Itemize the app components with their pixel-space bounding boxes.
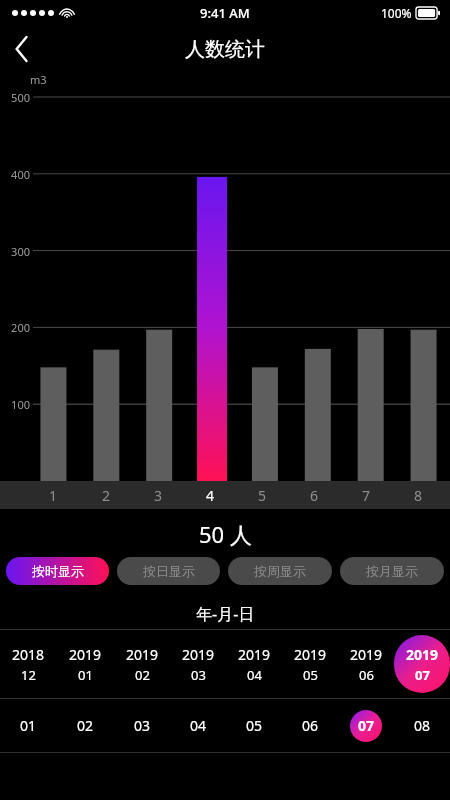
staticText: 2019 — [294, 645, 327, 664]
button[interactable]: 按周显示 — [228, 557, 332, 585]
staticText: 2019 — [182, 645, 215, 664]
staticText: 04 — [190, 716, 207, 735]
staticText: 按周显示 — [254, 563, 306, 579]
button[interactable]: 2019 — [170, 630, 226, 698]
staticText: 03 — [134, 716, 151, 735]
button[interactable]: 2019 — [282, 630, 338, 698]
staticText: 7 — [362, 486, 371, 505]
staticText: 05 — [246, 716, 263, 735]
button[interactable]: 8 — [392, 481, 444, 509]
button[interactable]: 08 — [394, 699, 450, 752]
staticText: 400 — [0, 167, 30, 182]
staticText: 300 — [0, 244, 30, 259]
button[interactable]: 2 — [80, 481, 132, 509]
button[interactable]: Back — [0, 27, 44, 71]
button[interactable]: 06 — [282, 699, 338, 752]
button[interactable]: 03 — [114, 699, 170, 752]
staticText: 07 — [358, 716, 375, 735]
staticText: 06 — [302, 716, 319, 735]
button[interactable]: 2019 — [57, 630, 114, 698]
staticText: 01 — [20, 716, 37, 735]
staticText: 人数统计 — [185, 37, 265, 62]
staticText: 年-月-日 — [196, 603, 255, 625]
button[interactable]: 1 — [27, 481, 80, 509]
staticText: 04 — [247, 666, 262, 684]
staticText: 12 — [21, 666, 36, 684]
button[interactable]: 05 — [226, 699, 282, 752]
button[interactable]: 4 — [184, 481, 236, 509]
staticText: 07 — [415, 666, 430, 684]
button[interactable]: 6 — [288, 481, 340, 509]
staticText: 08 — [414, 716, 431, 735]
staticText: 2019 — [126, 645, 159, 664]
staticText: 4 — [206, 486, 215, 505]
staticText: 2 — [102, 486, 111, 505]
staticText: 2019 — [238, 645, 271, 664]
staticText: 2019 — [406, 645, 439, 664]
button[interactable]: 2019 — [394, 630, 450, 698]
button[interactable]: 3 — [132, 481, 184, 509]
button[interactable]: 04 — [170, 699, 226, 752]
staticText: 2018 — [12, 645, 45, 664]
staticText: 200 — [0, 320, 30, 335]
button[interactable]: 按日显示 — [117, 557, 220, 585]
button[interactable]: 02 — [57, 699, 114, 752]
staticText: 2019 — [350, 645, 383, 664]
button[interactable]: 按月显示 — [340, 557, 444, 585]
button[interactable]: 按时显示 — [6, 557, 109, 585]
staticText: 3 — [154, 486, 163, 505]
staticText: 02 — [135, 666, 150, 684]
button[interactable]: 7 — [340, 481, 392, 509]
button[interactable]: 2018 — [0, 630, 57, 698]
staticText: 01 — [78, 666, 93, 684]
button[interactable]: 01 — [0, 699, 57, 752]
staticText: 02 — [77, 716, 94, 735]
staticText: 1 — [49, 486, 58, 505]
staticText: 8 — [414, 486, 423, 505]
staticText: 06 — [359, 666, 374, 684]
staticText: 5 — [258, 486, 267, 505]
staticText: 按时显示 — [32, 563, 84, 579]
staticText: 6 — [310, 486, 319, 505]
button[interactable]: 2019 — [114, 630, 170, 698]
button[interactable]: 5 — [236, 481, 288, 509]
staticText: 按月显示 — [366, 563, 418, 579]
staticText: 03 — [191, 666, 206, 684]
staticText: 2019 — [69, 645, 102, 664]
staticText: 500 — [0, 90, 30, 105]
staticText: m3 — [30, 72, 47, 87]
staticText: 100% — [381, 5, 412, 21]
staticText: 按日显示 — [143, 563, 195, 579]
button[interactable]: 2019 — [338, 630, 394, 698]
button[interactable]: 2019 — [226, 630, 282, 698]
staticText: 50 人 — [199, 519, 252, 549]
staticText: 9:41 AM — [200, 4, 250, 22]
staticText: 05 — [303, 666, 318, 684]
button[interactable]: 07 — [338, 699, 394, 752]
staticText: 100 — [0, 397, 30, 412]
